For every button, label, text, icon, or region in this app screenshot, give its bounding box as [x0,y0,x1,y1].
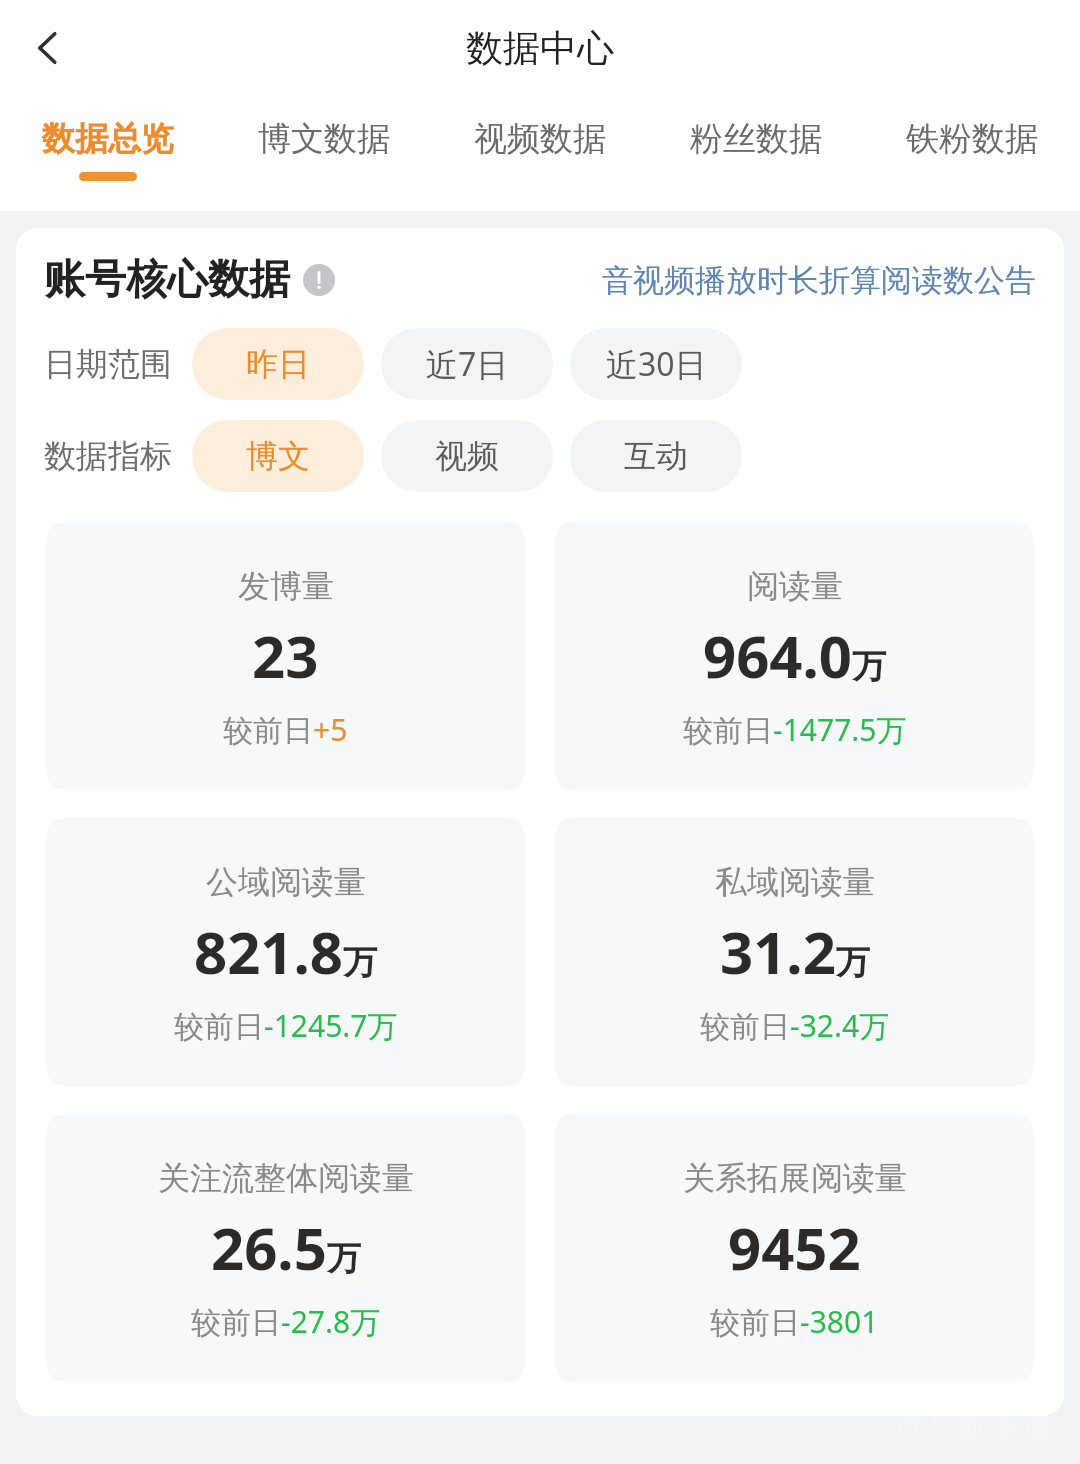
button[interactable]: 公域阅读量 [46,818,525,1086]
staticText: 数据指标 [44,436,172,476]
staticText: 视频 [435,436,499,476]
staticText: 较前日-3801 [710,1301,879,1342]
button[interactable]: 视频数据 [432,96,648,211]
button[interactable]: 粉丝数据 [648,96,864,211]
staticText: 博文数据 [258,118,390,160]
staticText: 近7日 [426,342,509,386]
staticText: 博文 [246,436,310,476]
button[interactable]: 发博量 [46,522,525,790]
button[interactable]: 数据总览 [0,96,216,211]
staticText: 31.2万 [720,912,870,991]
staticText: 关注流整体阅读量 [158,1158,414,1198]
staticText: 26.5万 [211,1208,361,1287]
staticText: @晶刚专属 [897,1406,1054,1450]
staticText: 昨日 [246,344,310,384]
button[interactable]: 阅读量 [555,522,1034,790]
staticText: 关系拓展阅读量 [683,1158,907,1198]
staticText: 互动 [624,436,688,476]
staticText: 964.0万 [703,616,887,695]
staticText: 821.8万 [194,912,378,991]
staticText: 粉丝数据 [690,118,822,160]
staticText: 发博量 [238,566,334,606]
button[interactable]: 音视频播放时长折算阅读数公告 [602,261,1036,300]
button[interactable]: 关系拓展阅读量 [555,1114,1034,1382]
staticText: 日期范围 [44,344,172,384]
staticText: 数据总览 [42,118,174,160]
staticText: 阅读量 [747,566,843,606]
staticText: 账号核心数据 [44,254,290,306]
staticText: 铁粉数据 [906,118,1038,160]
staticText: 较前日-32.4万 [700,1005,890,1046]
staticText: 较前日-27.8万 [191,1301,381,1342]
staticText: 公域阅读量 [206,862,366,902]
button[interactable]: 昨日 [192,328,364,400]
staticText: 较前日+5 [223,709,348,750]
button[interactable]: Info [302,263,336,297]
staticText: 视频数据 [474,118,606,160]
button[interactable]: 铁粉数据 [864,96,1080,211]
button[interactable]: 博文数据 [216,96,432,211]
button[interactable]: 私域阅读量 [555,818,1034,1086]
button[interactable]: 互动 [570,420,742,492]
button[interactable]: 近7日 [381,328,553,400]
staticText: 近30日 [606,342,707,386]
button[interactable]: 关注流整体阅读量 [46,1114,525,1382]
staticText: 较前日-1245.7万 [174,1005,398,1046]
staticText: 9452 [728,1208,861,1287]
button[interactable]: 博文 [192,420,364,492]
button[interactable]: 视频 [381,420,553,492]
staticText: 数据中心 [466,25,614,72]
staticText: 私域阅读量 [715,862,875,902]
button[interactable]: 近30日 [570,328,742,400]
staticText: 音视频播放时长折算阅读数公告 [602,261,1036,300]
button[interactable]: Back [0,0,96,96]
staticText: 较前日-1477.5万 [683,709,907,750]
staticText: 23 [252,616,319,695]
